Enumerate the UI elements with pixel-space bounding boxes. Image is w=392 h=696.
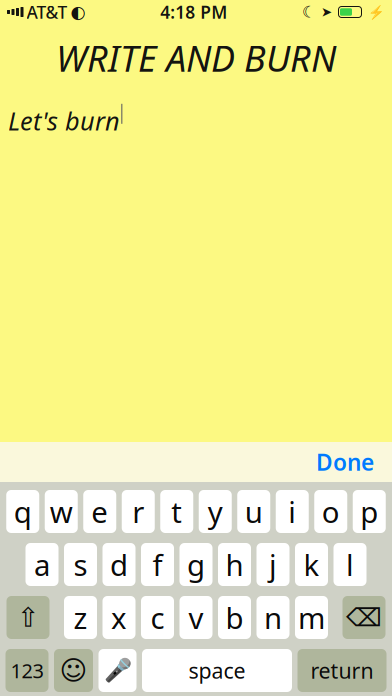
staticText: v [188,598,203,637]
button[interactable]: q [6,490,39,533]
button[interactable]: u [237,490,270,533]
button[interactable]: b [218,596,251,639]
staticText: r [132,492,144,531]
staticText: m [298,598,325,637]
staticText: n [264,598,282,637]
button[interactable]: n [256,596,289,639]
staticText: ☺ [59,655,87,686]
button[interactable]: w [45,490,78,533]
staticText: p [360,492,378,531]
staticText: AT&T [26,0,67,23]
staticText: s [73,545,87,584]
button[interactable]: z [64,596,97,639]
button[interactable]: m [295,596,328,639]
staticText: b [225,598,243,637]
button[interactable]: Done [302,439,388,485]
button[interactable]: Emoji [54,649,93,692]
button[interactable]: space [142,649,292,692]
staticText: return [310,656,373,685]
staticText: 🎤 [103,658,131,683]
staticText: z [73,598,87,637]
staticText: x [111,598,127,637]
button[interactable]: v [179,596,212,639]
staticText: l [346,545,354,584]
staticText: ☾ [302,3,316,21]
staticText: ◐ [70,2,85,22]
button[interactable]: c [141,596,174,639]
staticText: Let's burn [8,104,120,137]
staticText: h [225,545,243,584]
staticText: space [188,656,245,685]
staticText: u [245,492,263,531]
button[interactable]: r [122,490,155,533]
button[interactable]: a [25,543,58,586]
button[interactable]: e [83,490,116,533]
staticText: Done [316,447,374,477]
button[interactable]: j [256,543,289,586]
staticText: q [14,492,32,531]
staticText: o [322,492,340,531]
button[interactable]: x [102,596,135,639]
staticText: g [187,545,205,584]
staticText: WRITE AND BURN [56,34,336,82]
button[interactable]: y [199,490,232,533]
button[interactable]: g [179,543,212,586]
button[interactable]: f [141,543,174,586]
staticText: ⇧ [17,602,39,633]
staticText: e [91,492,108,531]
button[interactable]: return [297,649,386,692]
button[interactable]: l [333,543,366,586]
staticText: ⚡ [368,4,385,20]
button[interactable]: Dictation [98,649,136,692]
button[interactable]: k [295,543,328,586]
button[interactable]: d [102,543,135,586]
button[interactable]: i [276,490,309,533]
staticText: t [171,492,182,531]
staticText: i [288,492,296,531]
button[interactable]: s [64,543,97,586]
staticText: d [110,545,128,584]
staticText: ⌫ [346,603,382,632]
staticText: 123 [10,657,43,684]
staticText: c [150,598,164,637]
staticText: k [303,545,319,584]
staticText: 4:18 PM [160,0,227,23]
staticText: a [34,545,50,584]
button[interactable]: Shift [6,596,49,639]
staticText: ➤ [321,4,332,19]
staticText: w [50,492,73,531]
staticText: y [208,492,223,531]
staticText: j [269,545,277,584]
staticText: f [152,545,162,584]
button[interactable]: h [218,543,251,586]
button[interactable]: 123 [5,649,48,692]
button[interactable]: p [353,490,386,533]
button[interactable]: Delete [342,596,385,639]
button[interactable]: o [314,490,347,533]
button[interactable]: t [160,490,193,533]
